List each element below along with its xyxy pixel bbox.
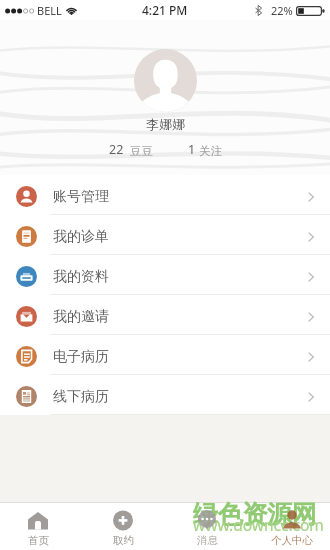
staticText: 首页: [28, 534, 49, 547]
staticText: 消息: [197, 534, 218, 547]
staticText: 4:21 PM: [142, 2, 188, 18]
staticText: 我的诊单: [53, 228, 109, 246]
staticText: www.downcc.com: [193, 514, 324, 535]
staticText: 李娜娜: [146, 116, 185, 132]
button[interactable]: 电子病历: [0, 335, 330, 375]
button[interactable]: 取约: [93, 503, 153, 550]
button[interactable]: 我的诊单: [0, 215, 330, 255]
staticText: 账号管理: [53, 188, 109, 206]
button[interactable]: 线下病历: [0, 375, 330, 415]
staticText: 22: [109, 141, 124, 158]
staticText: 1: [188, 141, 196, 158]
button[interactable]: 个人中心: [262, 503, 322, 550]
staticText: 个人中心: [271, 534, 313, 547]
button[interactable]: 消息: [177, 503, 237, 550]
button[interactable]: 首页: [8, 503, 68, 550]
staticText: 取约: [113, 534, 134, 547]
staticText: 我的邀请: [53, 308, 109, 326]
staticText: BELL: [37, 3, 62, 18]
staticText: 电子病历: [53, 348, 109, 366]
staticText: 豆豆: [130, 144, 153, 158]
button[interactable]: 账号管理: [0, 175, 330, 215]
staticText: 线下病历: [53, 388, 109, 406]
staticText: 22%: [271, 3, 293, 18]
staticText: 我的资料: [53, 268, 109, 286]
button[interactable]: 我的资料: [0, 255, 330, 295]
staticText: 关注: [199, 144, 222, 158]
staticText: 绿色资源网: [193, 499, 317, 530]
button[interactable]: 我的邀请: [0, 295, 330, 335]
